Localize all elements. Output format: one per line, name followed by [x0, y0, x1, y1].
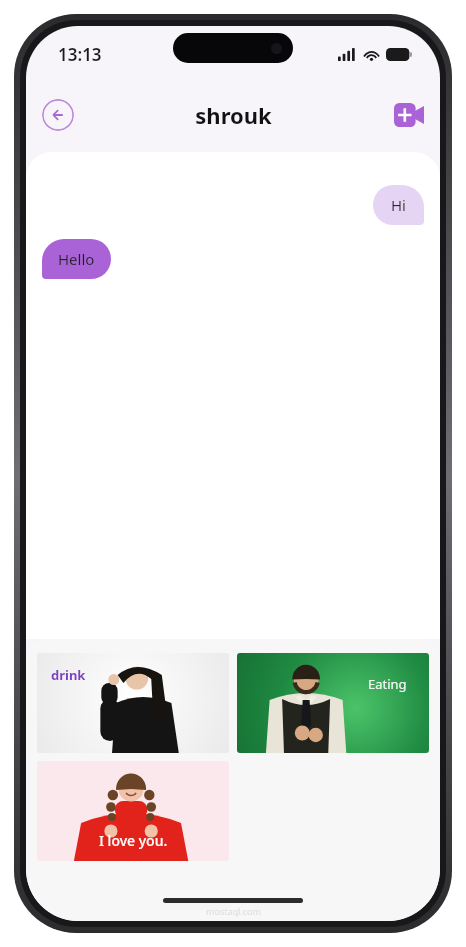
staticText: drink [51, 666, 86, 684]
button[interactable]: Hi [373, 185, 424, 225]
button[interactable]: Start video call [394, 103, 424, 127]
button[interactable]: Sign video: I love you [37, 761, 229, 861]
staticText: I love you. [99, 831, 168, 850]
button[interactable]: Hello [42, 239, 111, 279]
staticText: shrouk [195, 100, 272, 130]
staticText: mostaql.com [206, 905, 261, 917]
staticText: Hi [391, 195, 406, 215]
staticText: Hello [58, 249, 95, 269]
button[interactable]: Sign video: Eating [237, 653, 429, 753]
button[interactable]: Sign video: drink [37, 653, 229, 753]
staticText: 13:13 [58, 43, 102, 66]
button[interactable]: Back [42, 99, 74, 131]
staticText: Eating [368, 675, 407, 693]
